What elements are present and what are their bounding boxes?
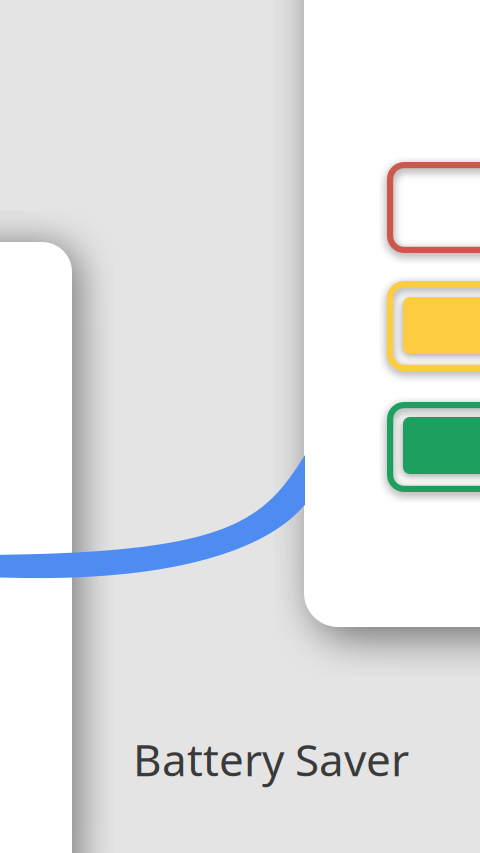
staticText: Battery Saver [133,730,409,788]
button[interactable]: Battery Saver [0,0,480,853]
